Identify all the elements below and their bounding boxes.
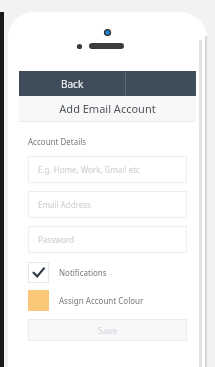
staticText: Add Email Account bbox=[59, 101, 156, 116]
button[interactable]: Password bbox=[28, 226, 187, 253]
staticText: Back bbox=[61, 77, 84, 91]
staticText: Email Address bbox=[38, 199, 91, 210]
button[interactable]: Email Address bbox=[28, 191, 187, 218]
staticText: E.g. Home, Work, Gmail etc bbox=[38, 164, 140, 175]
staticText: Password bbox=[38, 234, 75, 245]
button[interactable]: Back bbox=[19, 71, 125, 96]
button[interactable]: Save bbox=[28, 319, 187, 341]
staticText: Notifications bbox=[59, 267, 107, 278]
button[interactable]: E.g. Home, Work, Gmail etc bbox=[28, 156, 187, 183]
staticText: Save bbox=[98, 324, 118, 336]
button[interactable]: Notifications bbox=[28, 262, 187, 283]
staticText: Account Details bbox=[28, 136, 87, 147]
button[interactable]: Assign account colour swatch bbox=[28, 290, 187, 311]
staticText: Assign Account Colour bbox=[59, 295, 144, 306]
